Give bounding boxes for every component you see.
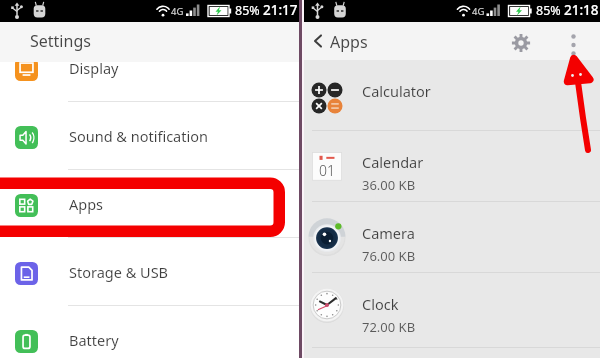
button[interactable]: Sound & notification [0,102,299,170]
button[interactable]: Apps [0,170,299,238]
staticText: Calendar [362,152,424,172]
staticText: Apps [69,194,104,214]
staticText: 72.00 KB [362,318,416,336]
staticText: Camera [362,223,415,243]
button[interactable]: Settings [511,33,531,53]
staticText: 4G [472,5,485,18]
button[interactable]: More options [564,30,586,52]
staticText: Settings [30,30,91,52]
button[interactable]: Battery [0,306,299,358]
button[interactable]: Display [0,34,299,102]
staticText: 36.00 KB [362,176,416,194]
button[interactable]: Storage & USB [0,238,299,306]
staticText: Clock [362,294,399,314]
staticText: Storage & USB [69,262,169,282]
staticText: Calculator [362,81,431,101]
button[interactable]: Back [308,31,328,51]
staticText: Display [69,58,119,78]
staticText: Apps [330,31,368,53]
staticText: 01 [319,161,335,180]
button[interactable]: Camera [304,202,600,273]
staticText: Battery [69,330,119,350]
staticText: 4G [171,5,184,18]
staticText: 21:17 [263,1,298,19]
button[interactable]: Calculator [304,60,600,131]
staticText: 85% [235,2,260,19]
staticText: 21:18 [564,1,599,19]
staticText: 85% [536,2,561,19]
staticText: 76.00 KB [362,247,416,265]
staticText: Sound & notification [69,126,208,146]
button[interactable]: Clock [304,273,600,348]
button[interactable]: 01 [304,131,600,202]
